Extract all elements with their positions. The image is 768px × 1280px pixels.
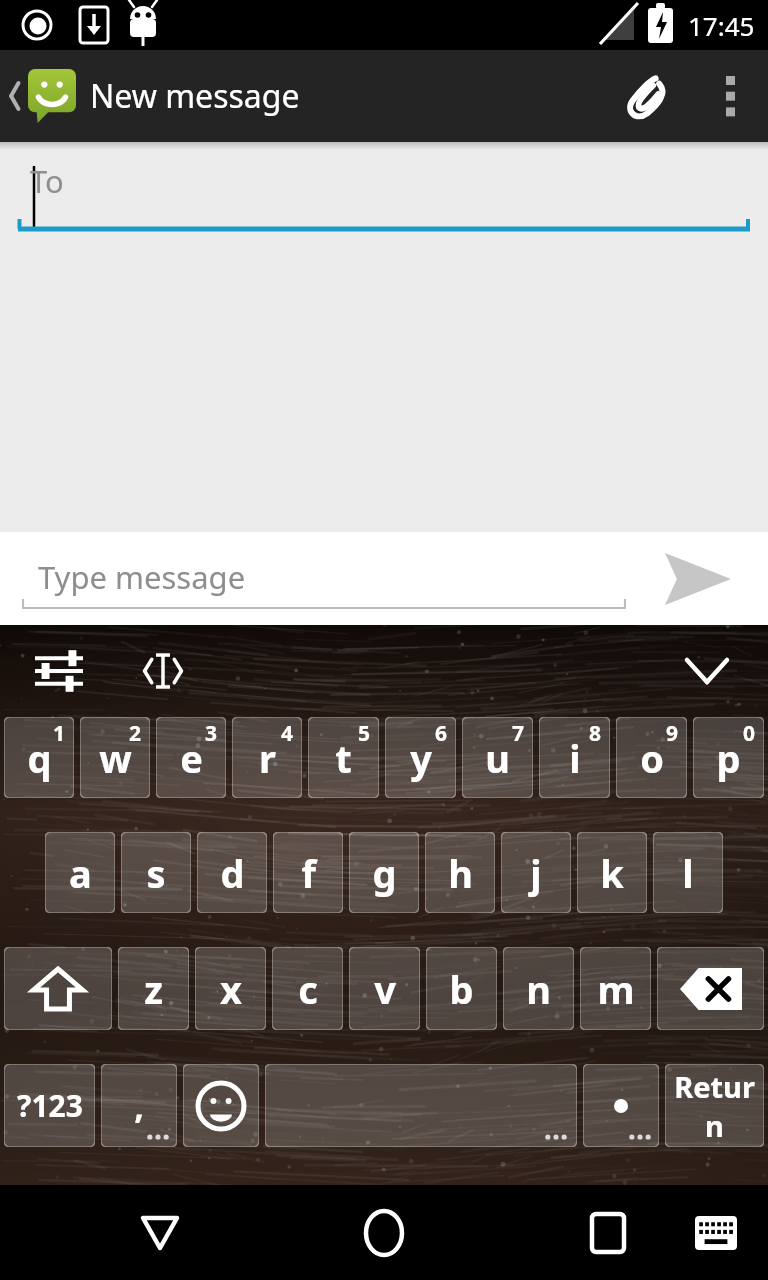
button[interactable]: z — [118, 947, 189, 1030]
staticText: 5 — [358, 719, 371, 748]
staticText: d — [220, 847, 245, 899]
button[interactable]: Recents — [568, 1193, 648, 1273]
staticText: To — [30, 160, 64, 202]
button[interactable] — [657, 947, 764, 1030]
staticText: c — [298, 963, 318, 1015]
staticText: f — [301, 847, 316, 899]
button[interactable]: h — [425, 832, 495, 913]
button[interactable]: To — [18, 152, 750, 237]
staticText: 2 — [129, 719, 142, 748]
staticText: j — [530, 847, 542, 899]
button[interactable]: j — [501, 832, 571, 913]
staticText: 7 — [512, 719, 525, 748]
staticText: e — [180, 732, 203, 784]
staticText: a — [69, 847, 92, 899]
button[interactable]: Type message — [22, 544, 626, 609]
button[interactable]: g — [349, 832, 419, 913]
staticText: t — [335, 732, 352, 784]
button[interactable]: Send — [628, 532, 768, 625]
staticText: h — [448, 847, 473, 899]
button[interactable] — [265, 1064, 577, 1147]
staticText: u — [485, 732, 510, 784]
button[interactable]: More options — [692, 50, 768, 142]
staticText: o — [640, 732, 664, 784]
staticText: Return — [665, 1067, 764, 1145]
button[interactable]: o — [616, 717, 687, 798]
staticText: q — [27, 732, 52, 784]
button[interactable]: n — [503, 947, 574, 1030]
button[interactable]: Move cursor — [128, 636, 198, 706]
button[interactable] — [4, 947, 112, 1030]
staticText: l — [682, 847, 694, 899]
button[interactable]: e — [156, 717, 226, 798]
staticText: g — [372, 847, 397, 899]
staticText: ?123 — [17, 1085, 83, 1126]
button[interactable]: f — [273, 832, 343, 913]
button[interactable]: Switch keyboard — [680, 1197, 752, 1269]
button[interactable]: y — [385, 717, 456, 798]
button[interactable]: ?123 — [4, 1064, 95, 1147]
staticText: k — [600, 847, 624, 899]
staticText: 3 — [205, 719, 218, 748]
button[interactable]: u — [462, 717, 533, 798]
button[interactable] — [583, 1064, 659, 1147]
staticText: x — [220, 963, 242, 1015]
staticText: , — [134, 1083, 144, 1129]
staticText: 8 — [589, 719, 602, 748]
button[interactable]: w — [80, 717, 150, 798]
staticText: m — [597, 963, 635, 1015]
staticText: 1 — [53, 719, 66, 748]
staticText: 6 — [435, 719, 448, 748]
button[interactable]: , — [101, 1064, 177, 1147]
button[interactable]: r — [232, 717, 302, 798]
staticText: b — [449, 963, 474, 1015]
staticText: s — [146, 847, 166, 899]
staticText: w — [99, 732, 132, 784]
button[interactable]: c — [272, 947, 343, 1030]
staticText: n — [526, 963, 551, 1015]
button[interactable]: v — [349, 947, 420, 1030]
button[interactable]: Attach — [600, 50, 692, 142]
button[interactable]: t — [308, 717, 379, 798]
staticText: 0 — [743, 719, 756, 748]
button[interactable]: p — [693, 717, 764, 798]
button[interactable]: Hide keyboard — [672, 636, 742, 706]
button[interactable]: q — [4, 717, 74, 798]
button[interactable]: k — [577, 832, 647, 913]
staticText: v — [374, 963, 396, 1015]
button[interactable] — [183, 1064, 259, 1147]
staticText: r — [259, 732, 276, 784]
button[interactable]: l — [653, 832, 723, 913]
staticText: 9 — [666, 719, 679, 748]
staticText: i — [569, 732, 581, 784]
button[interactable]: x — [195, 947, 266, 1030]
button[interactable]: New message — [0, 50, 304, 142]
button[interactable]: i — [539, 717, 610, 798]
button[interactable]: s — [121, 832, 191, 913]
button[interactable]: Back — [120, 1193, 200, 1273]
button[interactable]: b — [426, 947, 497, 1030]
button[interactable]: Return — [665, 1064, 764, 1147]
button[interactable]: a — [45, 832, 115, 913]
button[interactable]: d — [197, 832, 267, 913]
staticText: y — [410, 732, 432, 784]
staticText: p — [716, 732, 741, 784]
staticText: 4 — [281, 719, 294, 748]
staticText: Type message — [38, 556, 246, 598]
staticText: New message — [90, 74, 300, 118]
button[interactable]: Settings — [28, 640, 90, 702]
button[interactable]: m — [580, 947, 651, 1030]
button[interactable]: Home — [344, 1193, 424, 1273]
staticText: z — [144, 963, 163, 1015]
staticText: 17:45 — [688, 8, 755, 43]
